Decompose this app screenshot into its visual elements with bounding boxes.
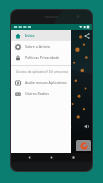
button[interactable]: Início: [11, 30, 71, 41]
button[interactable]: Volume: [81, 121, 91, 131]
button[interactable]: Share: [81, 30, 92, 41]
button[interactable]: Sobre o Artista: [11, 41, 71, 52]
button[interactable]: Avalie nossos Aplicativos: [11, 77, 71, 88]
button[interactable]: Recent apps: [70, 154, 77, 161]
staticText: Sobre o Artista: [25, 44, 50, 49]
staticText: Gostou do aplicativo? Dê uma nota: [16, 70, 69, 74]
staticText: Início: [25, 33, 35, 38]
button[interactable]: Back: [26, 154, 33, 161]
button[interactable]: Outros Radios: [11, 88, 71, 99]
button[interactable]: Políticas Privacidade: [11, 52, 71, 63]
staticText: Avalie nossos Aplicativos: [25, 80, 67, 85]
staticText: Outros Radios: [25, 91, 49, 96]
button[interactable]: Home: [48, 154, 55, 161]
button[interactable]: App: [76, 140, 91, 151]
staticText: Políticas Privacidade: [25, 55, 60, 60]
